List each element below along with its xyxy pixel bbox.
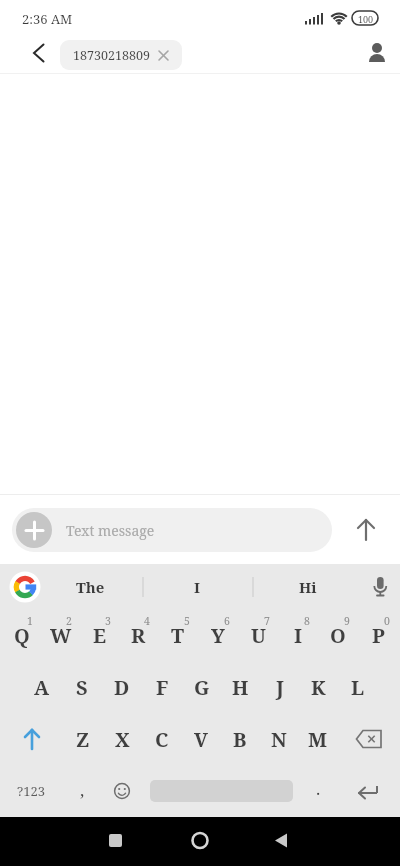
staticText: Hi — [299, 577, 317, 597]
staticText: 2:36 AM — [22, 10, 73, 28]
button[interactable]: M — [298, 713, 337, 765]
button[interactable]: L — [338, 661, 377, 713]
staticText: B — [233, 726, 247, 753]
staticText: V — [194, 726, 208, 753]
button[interactable] — [180, 822, 220, 862]
button[interactable]: Hi — [278, 564, 338, 610]
button[interactable]: Text message — [12, 508, 332, 552]
button[interactable]: , — [62, 765, 102, 817]
staticText: Text message — [66, 521, 155, 540]
staticText: H — [232, 674, 249, 701]
staticText: , — [80, 778, 85, 801]
staticText: L — [351, 674, 365, 701]
staticText: 7 — [264, 614, 270, 628]
button[interactable]: W — [41, 610, 80, 661]
staticText: D — [114, 674, 130, 701]
button[interactable]: B — [220, 713, 259, 765]
staticText: The — [76, 577, 105, 597]
button[interactable]: 18730218809 — [60, 40, 182, 70]
staticText: W — [50, 622, 72, 649]
staticText: X — [115, 726, 130, 753]
button[interactable]: . — [298, 765, 338, 817]
staticText: 100 — [358, 13, 374, 25]
staticText: 1 — [27, 614, 33, 628]
button[interactable]: N — [259, 713, 298, 765]
staticText: 2 — [66, 614, 72, 628]
staticText: . — [316, 777, 321, 800]
button[interactable] — [16, 512, 52, 548]
button[interactable]: D — [102, 661, 142, 713]
staticText: N — [271, 726, 287, 753]
button[interactable]: Y — [198, 610, 238, 661]
staticText: 5 — [184, 614, 190, 628]
button[interactable]: Q — [2, 610, 41, 661]
staticText: M — [308, 726, 328, 753]
staticText: U — [251, 622, 266, 649]
button[interactable] — [102, 765, 141, 817]
staticText: 4 — [144, 614, 150, 628]
staticText: 9 — [344, 614, 350, 628]
button[interactable] — [0, 36, 56, 73]
staticText: 0 — [384, 614, 390, 628]
staticText: 18730218809 — [73, 47, 150, 64]
staticText: C — [155, 726, 169, 753]
button[interactable]: S — [62, 661, 102, 713]
staticText: ?123 — [17, 782, 45, 800]
button[interactable]: R — [119, 610, 158, 661]
button[interactable]: E — [80, 610, 119, 661]
button[interactable]: I — [278, 610, 318, 661]
button[interactable] — [338, 765, 400, 817]
button[interactable]: G — [182, 661, 221, 713]
button[interactable] — [141, 765, 298, 817]
button[interactable] — [261, 822, 301, 862]
button[interactable] — [332, 495, 400, 564]
button[interactable] — [96, 822, 136, 862]
button[interactable]: V — [181, 713, 220, 765]
staticText: P — [372, 622, 385, 649]
staticText: A — [34, 674, 50, 701]
staticText: Y — [211, 622, 225, 649]
button[interactable]: H — [221, 661, 260, 713]
button[interactable]: C — [142, 713, 181, 765]
button[interactable]: The — [60, 564, 120, 610]
button[interactable]: O — [318, 610, 358, 661]
staticText: O — [330, 622, 346, 649]
staticText: I — [294, 622, 303, 649]
staticText: S — [76, 674, 88, 701]
button[interactable]: F — [142, 661, 182, 713]
button[interactable]: P — [358, 610, 398, 661]
button[interactable]: K — [299, 661, 338, 713]
staticText: T — [171, 622, 185, 649]
staticText: 6 — [224, 614, 230, 628]
button[interactable]: A — [22, 661, 62, 713]
staticText: 3 — [105, 614, 111, 628]
staticText: J — [276, 674, 284, 701]
staticText: F — [156, 674, 169, 701]
button[interactable]: T — [158, 610, 198, 661]
staticText: G — [194, 674, 210, 701]
button[interactable] — [0, 713, 63, 765]
staticText: Z — [76, 726, 90, 753]
button[interactable] — [356, 36, 400, 73]
staticText: 8 — [304, 614, 310, 628]
button[interactable]: ?123 — [0, 765, 62, 817]
staticText: Q — [14, 622, 30, 649]
button[interactable]: U — [238, 610, 278, 661]
staticText: E — [93, 622, 107, 649]
button[interactable] — [337, 713, 400, 765]
button[interactable]: I — [167, 564, 227, 610]
button[interactable]: X — [103, 713, 142, 765]
staticText: I — [194, 577, 201, 597]
staticText: K — [311, 674, 326, 701]
button[interactable]: J — [260, 661, 299, 713]
staticText: R — [131, 622, 146, 649]
button[interactable]: Z — [63, 713, 103, 765]
